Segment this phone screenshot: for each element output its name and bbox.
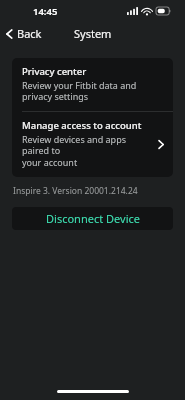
staticText: Privacy center bbox=[22, 65, 87, 78]
staticText: 14:45 bbox=[33, 5, 58, 18]
staticText: Review devices and apps paired to your a… bbox=[22, 133, 153, 169]
button[interactable]: Privacy center bbox=[12, 58, 173, 111]
staticText: Manage access to account bbox=[22, 119, 142, 132]
staticText: Inspire 3. Version 20001.214.24 bbox=[13, 185, 138, 197]
staticText: Review your Fitbit data and privacy sett… bbox=[22, 79, 137, 103]
staticText: Back bbox=[17, 26, 42, 41]
button[interactable]: Back bbox=[0, 23, 50, 44]
staticText: System bbox=[74, 26, 112, 41]
button[interactable]: Disconnect Device bbox=[12, 207, 173, 230]
button[interactable]: Manage access to account bbox=[12, 112, 173, 177]
other: Open manage access to account bbox=[157, 138, 165, 151]
staticText: Disconnect Device bbox=[46, 211, 140, 226]
